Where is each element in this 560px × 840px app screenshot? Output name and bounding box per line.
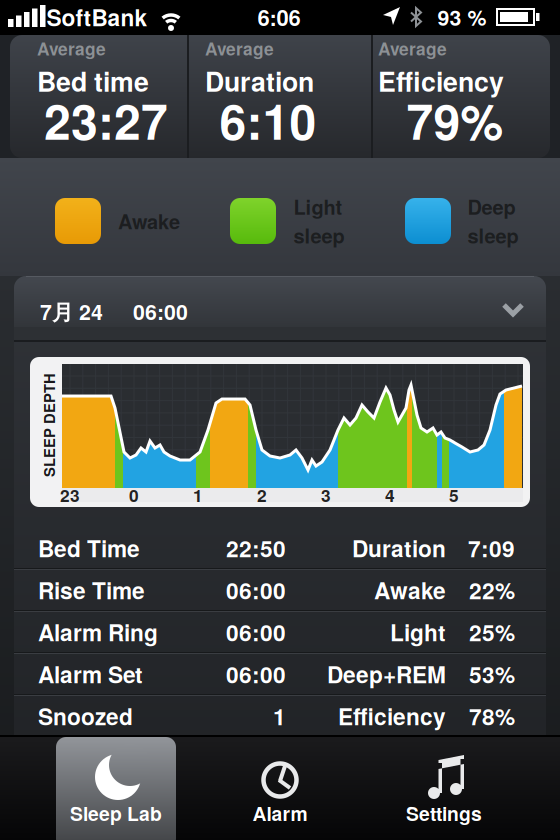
staticText: 78% <box>469 700 515 732</box>
staticText: Average <box>205 36 274 61</box>
staticText: Alarm Set <box>38 658 143 690</box>
staticText: Light <box>293 192 342 221</box>
staticText: 0 <box>129 483 139 507</box>
staticText: Awake <box>118 207 180 235</box>
staticText: SoftBank <box>46 1 147 33</box>
staticText: 6:06 <box>257 1 300 33</box>
staticText: Alarm <box>252 799 307 827</box>
staticText: 06:00 <box>226 574 286 606</box>
staticText: 79% <box>406 86 503 154</box>
staticText: 6:10 <box>219 86 316 154</box>
staticText: 5 <box>449 483 459 507</box>
staticText: 22:50 <box>226 532 286 564</box>
staticText: Efficiency <box>338 700 446 732</box>
button[interactable]: 7月 24 <box>14 276 546 341</box>
staticText: 1 <box>273 700 286 732</box>
staticText: Deep <box>467 192 515 221</box>
staticText: Average <box>37 36 106 61</box>
staticText: 06:00 <box>133 296 188 326</box>
staticText: 4 <box>385 483 395 507</box>
staticText: 06:00 <box>226 658 286 690</box>
staticText: Awake <box>374 574 446 606</box>
staticText: 93 % <box>437 2 486 32</box>
staticText: Bed time <box>37 62 149 100</box>
staticText: Settings <box>406 799 482 827</box>
staticText: 23 <box>60 483 80 507</box>
staticText: Light <box>390 616 446 648</box>
staticText: Average <box>378 36 447 61</box>
staticText: 23:27 <box>44 86 168 154</box>
staticText: SLEEP DEPTH <box>0 414 101 435</box>
staticText: Duration <box>352 532 446 564</box>
staticText: 06:00 <box>226 616 286 648</box>
button[interactable]: Alarm <box>198 735 362 840</box>
staticText: Bed Time <box>38 532 140 564</box>
staticText: Snoozed <box>38 700 133 732</box>
staticText: sleep <box>293 221 344 250</box>
staticText: Alarm Ring <box>38 616 158 648</box>
staticText: 3 <box>321 483 331 507</box>
staticText: Rise Time <box>38 574 145 606</box>
staticText: Duration <box>205 62 314 100</box>
staticText: 7:09 <box>468 532 515 564</box>
button[interactable]: Sleep Lab <box>34 735 198 840</box>
staticText: 22% <box>469 574 515 606</box>
staticText: 25% <box>469 616 515 648</box>
staticText: Efficiency <box>378 62 504 100</box>
staticText: 7月 24 <box>40 296 103 326</box>
staticText: sleep <box>467 221 518 250</box>
staticText: 2 <box>257 483 267 507</box>
staticText: Sleep Lab <box>70 799 162 827</box>
staticText: 1 <box>193 483 203 507</box>
staticText: 53% <box>469 658 515 690</box>
staticText: Deep+REM <box>327 658 446 690</box>
button[interactable]: Settings <box>362 735 526 840</box>
